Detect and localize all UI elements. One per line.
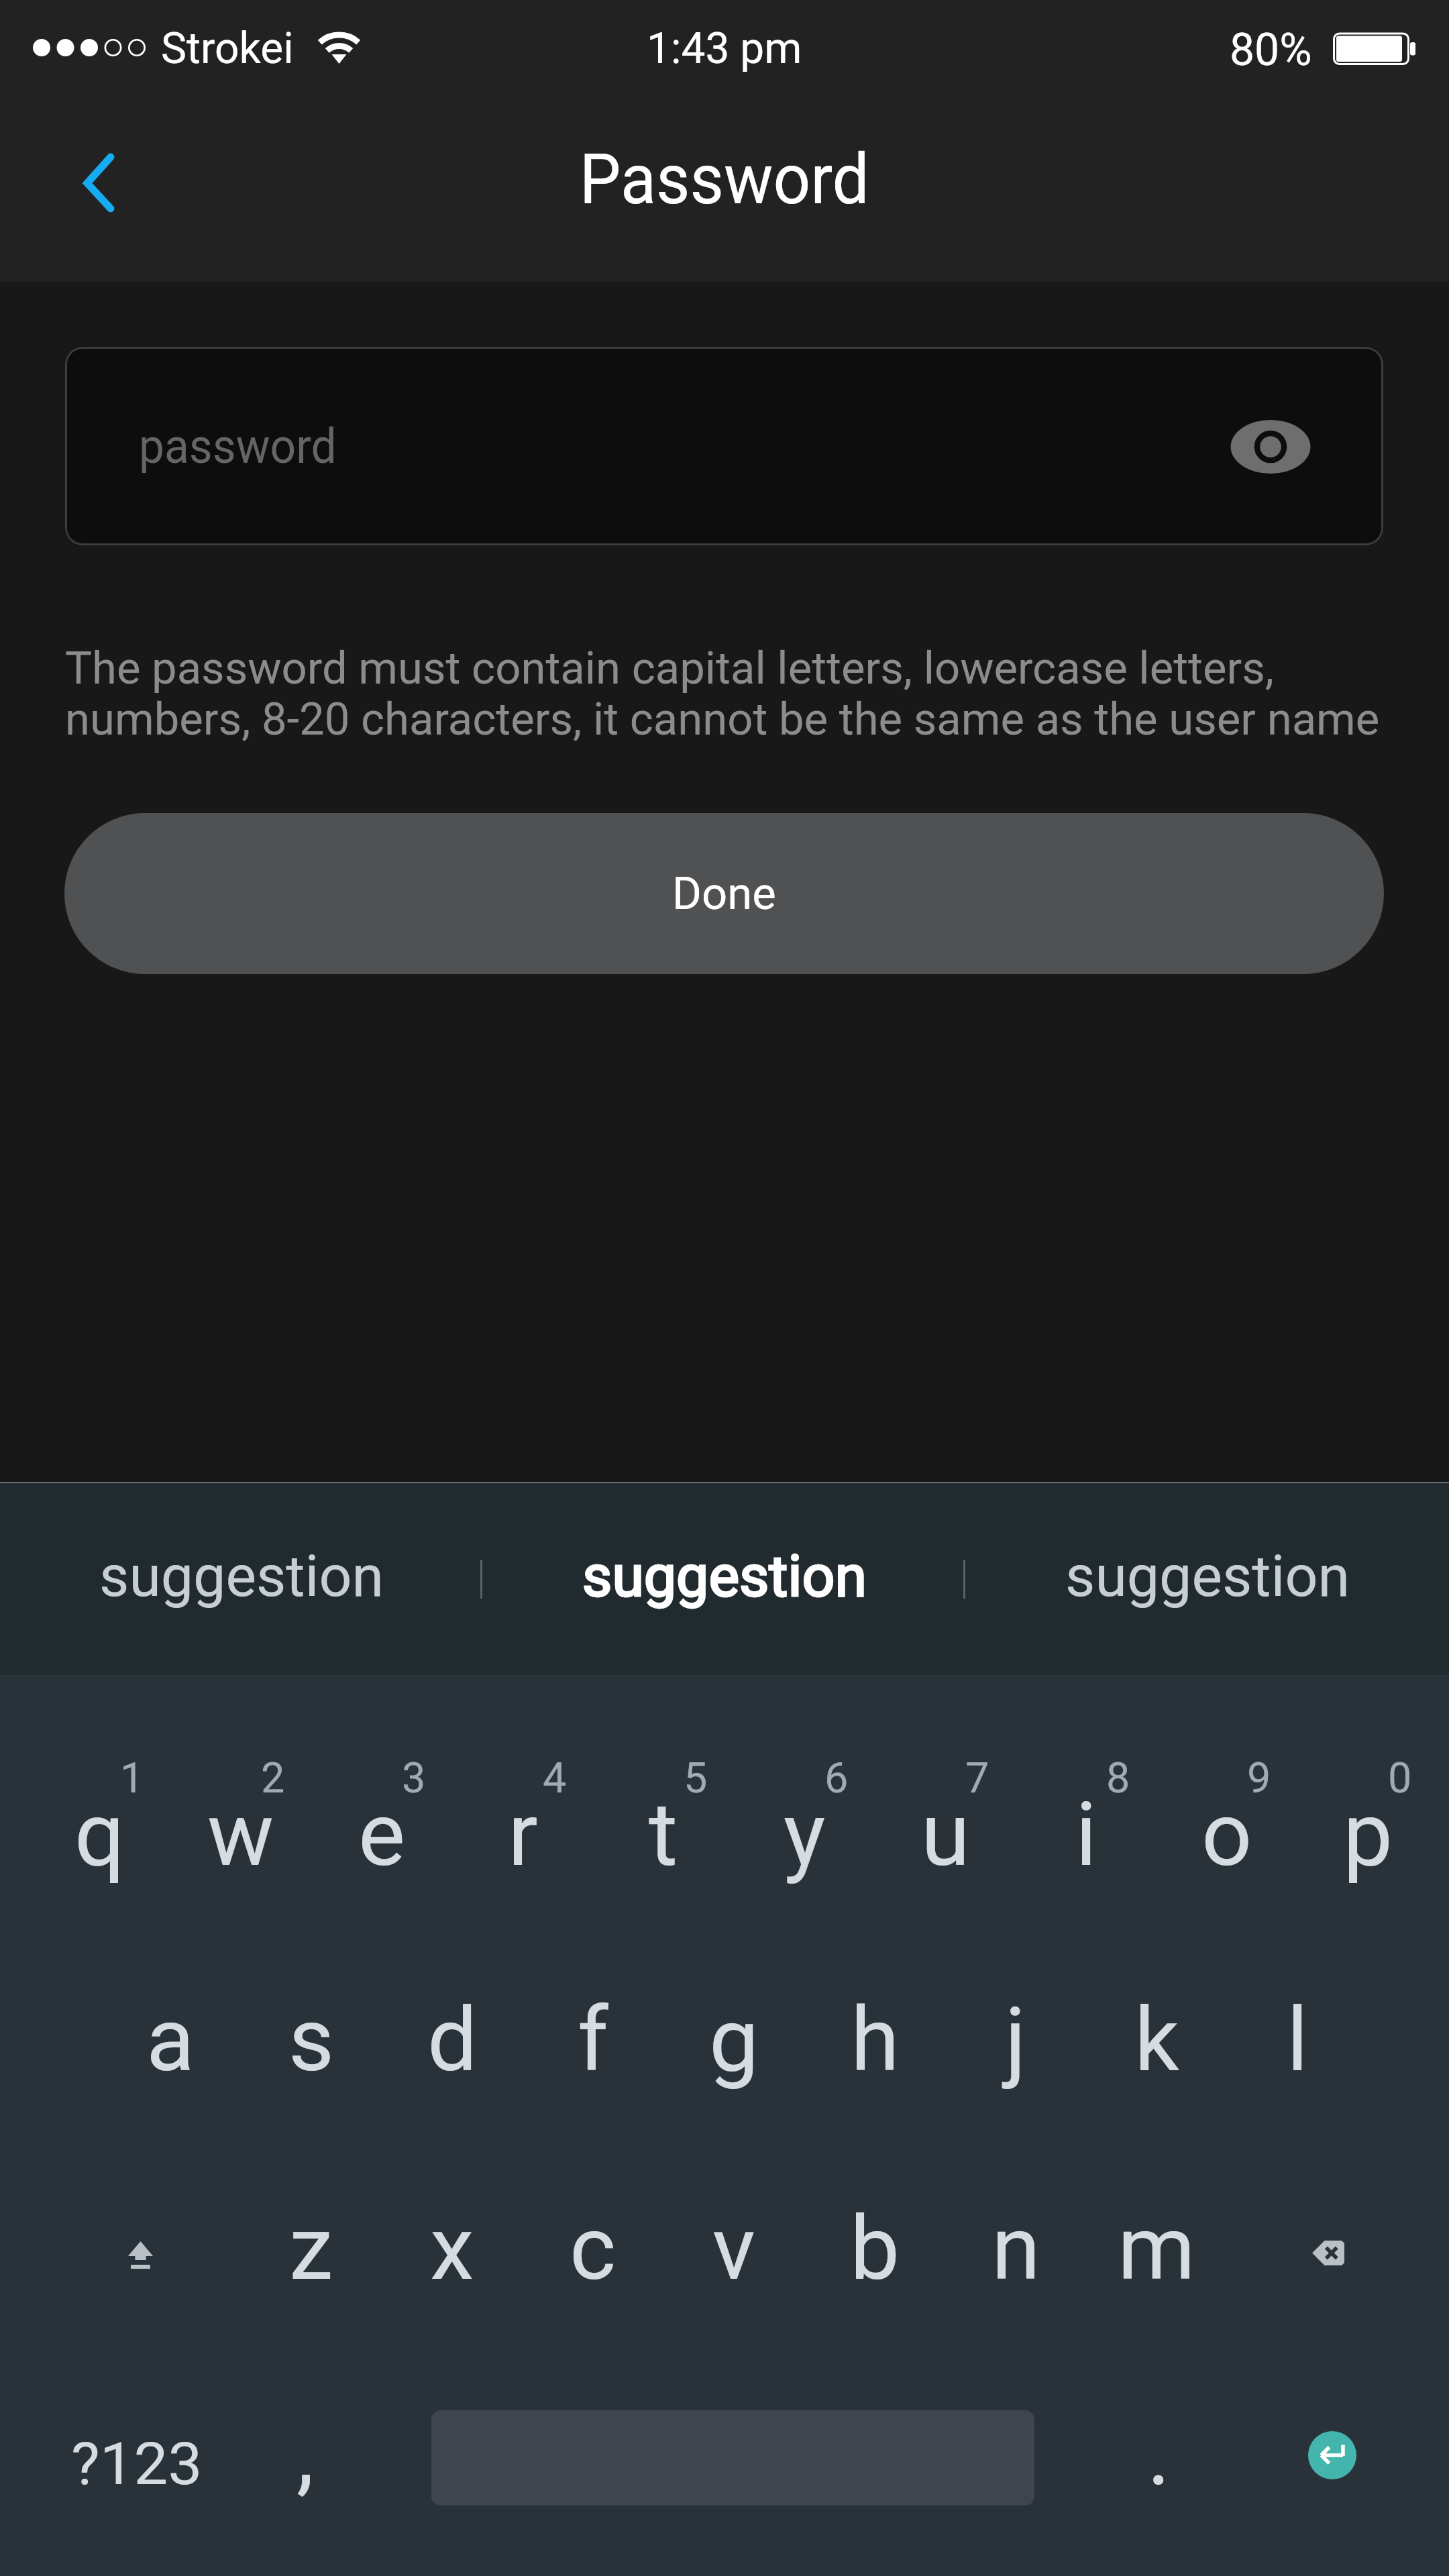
button[interactable]: z bbox=[231, 2197, 392, 2339]
staticText: Strokei bbox=[161, 23, 294, 74]
staticText: b bbox=[850, 2197, 900, 2301]
staticText: n bbox=[991, 2197, 1040, 2301]
button[interactable]: suggestion bbox=[510, 1480, 939, 1672]
button[interactable]: x bbox=[372, 2197, 533, 2339]
staticText: m bbox=[1118, 2197, 1195, 2301]
staticText: w bbox=[207, 1783, 274, 1887]
staticText: 2 bbox=[261, 1754, 285, 1803]
button[interactable]: o bbox=[1146, 1783, 1307, 1925]
button[interactable]: s bbox=[231, 1988, 392, 2130]
button[interactable]: suggestion bbox=[27, 1480, 456, 1672]
staticText: r bbox=[508, 1783, 538, 1887]
staticText: t bbox=[649, 1783, 678, 1887]
button[interactable]: w bbox=[160, 1783, 321, 1925]
button[interactable]: a bbox=[90, 1988, 251, 2130]
button[interactable]: c bbox=[513, 2197, 674, 2339]
button[interactable]: d bbox=[372, 1988, 533, 2130]
button[interactable]: r bbox=[442, 1783, 603, 1925]
staticText: q bbox=[74, 1783, 125, 1887]
staticText: , bbox=[297, 2402, 314, 2506]
staticText: suggestion bbox=[1065, 1542, 1350, 1610]
staticText: h bbox=[851, 1988, 900, 2092]
button[interactable]: ?123 bbox=[30, 2383, 268, 2576]
staticText: suggestion bbox=[99, 1542, 384, 1610]
button[interactable]: suggestion bbox=[993, 1480, 1422, 1672]
button[interactable]: p bbox=[1287, 1783, 1448, 1925]
staticText: ?123 bbox=[71, 2430, 202, 2498]
staticText: 4 bbox=[543, 1754, 567, 1803]
staticText: x bbox=[430, 2197, 474, 2301]
staticText: 1:43 pm bbox=[647, 23, 802, 74]
staticText: k bbox=[1134, 1988, 1179, 2092]
button[interactable]: , bbox=[225, 2402, 386, 2544]
staticText: password bbox=[139, 418, 337, 474]
staticText: 80% bbox=[1230, 24, 1312, 76]
staticText: g bbox=[709, 1988, 759, 2092]
button[interactable]: l bbox=[1217, 1988, 1378, 2130]
button[interactable]: . bbox=[1078, 2402, 1239, 2544]
button[interactable]: k bbox=[1076, 1988, 1237, 2130]
button[interactable]: b bbox=[794, 2197, 955, 2339]
button[interactable]: Back bbox=[40, 121, 161, 246]
staticText: 7 bbox=[965, 1754, 989, 1803]
staticText: s bbox=[288, 1988, 335, 2092]
staticText: 0 bbox=[1388, 1754, 1412, 1803]
staticText: i bbox=[1075, 1783, 1097, 1887]
button[interactable]: password bbox=[65, 347, 1383, 545]
staticText: 3 bbox=[402, 1754, 426, 1803]
staticText: 9 bbox=[1247, 1754, 1271, 1803]
button[interactable]: m bbox=[1076, 2197, 1237, 2339]
staticText: p bbox=[1343, 1783, 1393, 1887]
staticText: 6 bbox=[824, 1754, 849, 1803]
button[interactable]: g bbox=[653, 1988, 814, 2130]
button[interactable]: Show password bbox=[1217, 393, 1324, 500]
staticText: suggestion bbox=[582, 1542, 867, 1610]
staticText: 5 bbox=[684, 1754, 708, 1803]
button[interactable]: n bbox=[935, 2197, 1096, 2339]
staticText: o bbox=[1201, 1783, 1252, 1887]
button[interactable]: t bbox=[583, 1783, 744, 1925]
staticText: l bbox=[1287, 1988, 1309, 2092]
staticText: 8 bbox=[1106, 1754, 1130, 1803]
staticText: j bbox=[1005, 1988, 1026, 2092]
button[interactable]: h bbox=[794, 1988, 955, 2130]
staticText: y bbox=[784, 1783, 826, 1887]
button[interactable]: f bbox=[513, 1988, 674, 2130]
button[interactable]: u bbox=[865, 1783, 1026, 1925]
staticText: Password bbox=[579, 139, 870, 221]
staticText: Done bbox=[672, 867, 776, 920]
staticText: u bbox=[921, 1783, 970, 1887]
staticText: e bbox=[358, 1783, 405, 1887]
button[interactable]: v bbox=[653, 2197, 814, 2339]
button[interactable]: Backspace bbox=[1220, 2152, 1436, 2353]
staticText: z bbox=[289, 2197, 333, 2301]
button[interactable]: e bbox=[301, 1783, 462, 1925]
staticText: d bbox=[427, 1988, 478, 2092]
staticText: a bbox=[146, 1988, 195, 2092]
staticText: The password must contain capital letter… bbox=[65, 642, 1390, 746]
button[interactable]: i bbox=[1006, 1783, 1167, 1925]
button[interactable]: y bbox=[724, 1783, 885, 1925]
staticText: c bbox=[570, 2197, 616, 2301]
staticText: 1 bbox=[120, 1754, 144, 1803]
button[interactable]: Done bbox=[64, 813, 1384, 974]
button[interactable]: j bbox=[935, 1988, 1096, 2130]
button[interactable]: Shift bbox=[35, 2154, 246, 2355]
staticText: f bbox=[578, 1988, 608, 2092]
button[interactable]: Enter bbox=[1262, 2355, 1403, 2556]
button[interactable]: q bbox=[19, 1783, 180, 1925]
staticText: v bbox=[712, 2197, 755, 2301]
staticText: . bbox=[1147, 2402, 1171, 2506]
